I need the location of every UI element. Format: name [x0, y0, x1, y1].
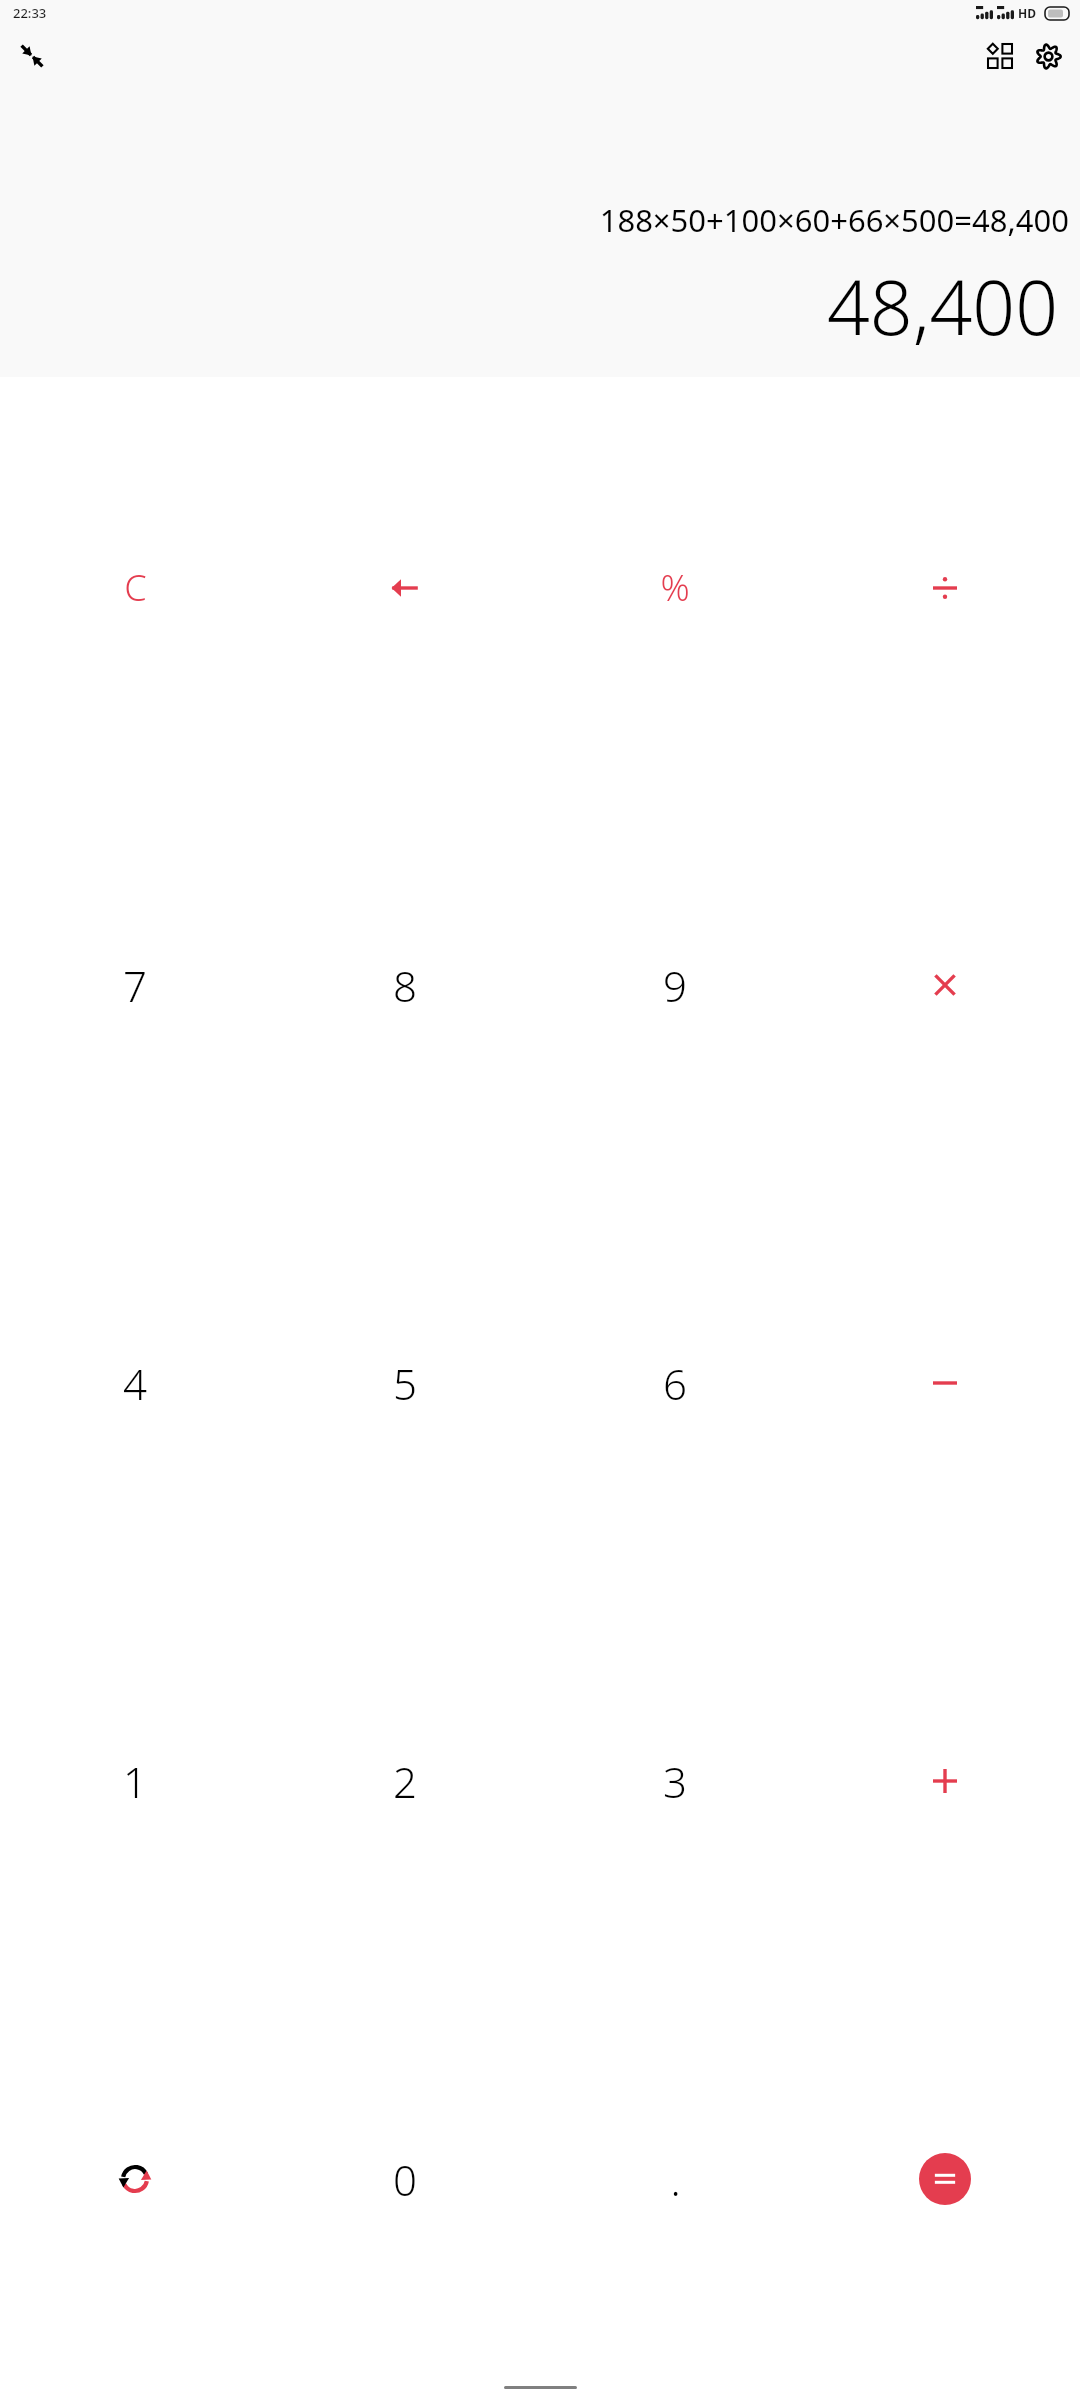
staticText: .	[670, 2151, 681, 2208]
staticText: 6	[663, 1355, 687, 1412]
staticText: 22:33	[13, 4, 47, 22]
staticText: 0	[393, 2151, 417, 2208]
staticText: 8	[393, 957, 417, 1014]
button[interactable]: 7	[0, 786, 270, 1184]
button[interactable]: Convert	[0, 1980, 270, 2378]
staticText: 4	[123, 1355, 147, 1412]
button[interactable]: Apps	[976, 32, 1024, 80]
button[interactable]: 1	[0, 1582, 270, 1980]
button[interactable]: Minus	[810, 1184, 1080, 1582]
button[interactable]: Equals	[919, 2153, 971, 2205]
staticText: %	[660, 563, 690, 612]
button[interactable]: %	[540, 389, 810, 786]
button[interactable]: Backspace	[270, 389, 540, 786]
button[interactable]: 0	[270, 1980, 540, 2378]
staticText: C	[124, 563, 147, 612]
button[interactable]: Plus	[810, 1582, 1080, 1980]
staticText: 188×50+100×60+66×500=48,400	[599, 199, 1069, 241]
staticText: 7	[123, 957, 147, 1014]
button[interactable]: 3	[540, 1582, 810, 1980]
staticText: 9	[663, 957, 687, 1014]
button[interactable]: 4	[0, 1184, 270, 1582]
staticText: 5	[393, 1355, 417, 1412]
button[interactable]: Collapse	[8, 32, 56, 80]
staticText: 3	[663, 1753, 687, 1810]
staticText: 48,400	[826, 255, 1058, 357]
button[interactable]: Multiply	[810, 786, 1080, 1184]
button[interactable]: 9	[540, 786, 810, 1184]
button[interactable]: 5	[270, 1184, 540, 1582]
button[interactable]: Settings	[1024, 32, 1072, 80]
staticText: 1	[123, 1753, 147, 1810]
button[interactable]: Divide	[810, 389, 1080, 786]
button[interactable]: 2	[270, 1582, 540, 1980]
button[interactable]: C	[0, 389, 270, 786]
button[interactable]: 6	[540, 1184, 810, 1582]
staticText: HD	[1018, 5, 1036, 21]
button[interactable]: 8	[270, 786, 540, 1184]
staticText: 2	[393, 1753, 417, 1810]
